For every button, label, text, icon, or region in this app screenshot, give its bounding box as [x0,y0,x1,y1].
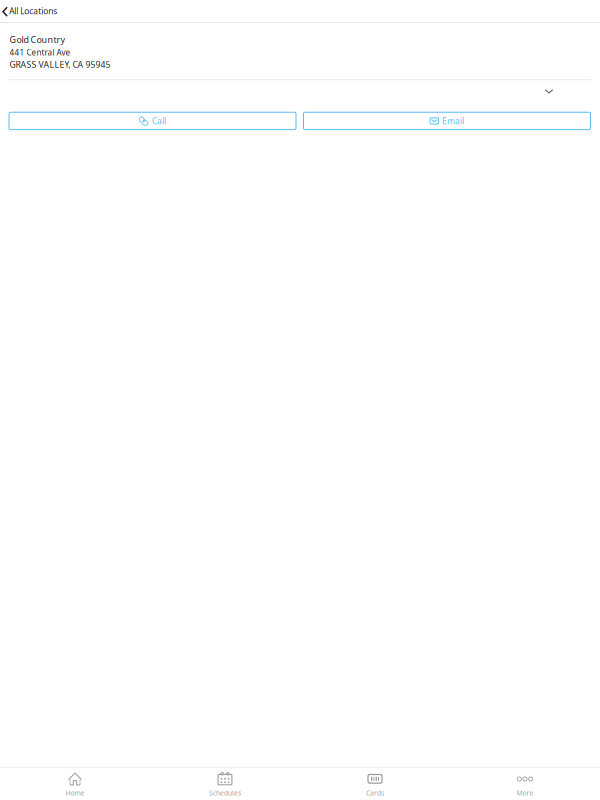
button[interactable]: Call [9,112,296,130]
staticText: All Locations [9,5,57,17]
staticText: Cards [366,788,384,797]
button[interactable]: Email [303,112,590,130]
staticText: GRASS VALLEY, CA 95945 [9,58,110,70]
button[interactable]: More [450,768,600,800]
button[interactable]: Show hours [0,80,600,102]
staticText: 441 Central Ave [9,47,70,58]
staticText: Home [65,788,84,797]
staticText: Call [152,115,166,127]
staticText: Gold Country [9,33,65,46]
button[interactable]: All Locations [0,0,600,22]
staticText: Schedules [209,788,241,797]
staticText: Email [442,115,464,127]
staticText: More [516,788,533,797]
button[interactable]: Cards [300,768,450,800]
button[interactable]: Schedules [150,768,300,800]
button[interactable]: Home [0,768,150,800]
